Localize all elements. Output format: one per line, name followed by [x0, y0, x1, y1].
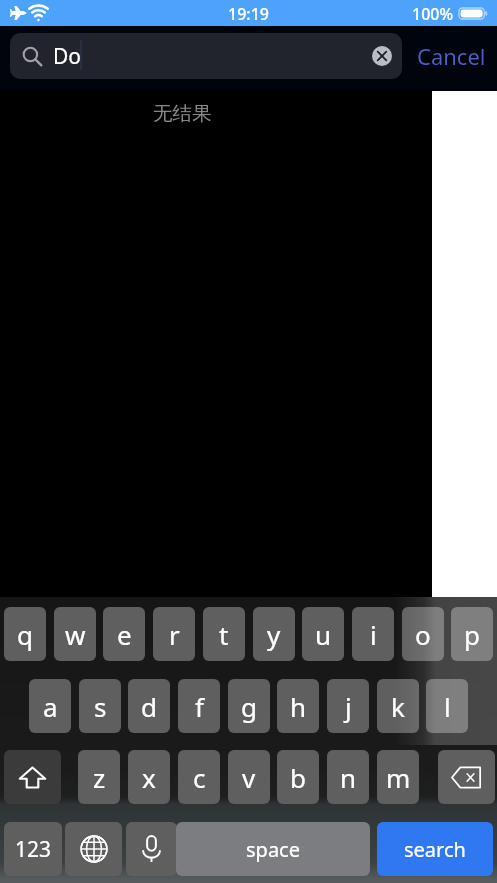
button[interactable]: Shift [4, 750, 61, 804]
button[interactable]: p [451, 607, 493, 661]
button[interactable]: Do [10, 33, 402, 79]
staticText: h [290, 689, 307, 724]
button[interactable]: r [153, 607, 195, 661]
button[interactable]: k [377, 679, 419, 733]
staticText: n [340, 760, 357, 795]
staticText: Cancel [417, 41, 486, 71]
button[interactable]: Clear text [372, 46, 392, 66]
staticText: m [386, 760, 411, 795]
button[interactable]: y [253, 607, 295, 661]
staticText: o [415, 617, 431, 652]
button[interactable]: j [327, 679, 369, 733]
button[interactable]: Numbers [4, 822, 62, 876]
staticText: 100% [412, 3, 454, 25]
button[interactable]: a [29, 679, 71, 733]
staticText: p [464, 617, 480, 652]
button[interactable]: l [426, 679, 468, 733]
button[interactable]: d [128, 679, 170, 733]
staticText: search [404, 836, 466, 863]
button[interactable]: Cancel [410, 33, 492, 79]
button[interactable]: h [277, 679, 319, 733]
staticText: l [444, 689, 451, 724]
button[interactable]: search [377, 822, 493, 876]
button[interactable]: Next keyboard [65, 822, 122, 876]
staticText: y [267, 617, 281, 652]
staticText: x [142, 760, 156, 795]
button[interactable]: s [79, 679, 121, 733]
button[interactable]: b [277, 750, 319, 804]
button[interactable]: Backspace [438, 750, 495, 804]
staticText: f [195, 689, 204, 724]
button[interactable]: i [352, 607, 394, 661]
staticText: 123 [15, 835, 52, 864]
staticText: 19:19 [228, 3, 269, 25]
button[interactable]: q [4, 607, 46, 661]
staticText: k [391, 689, 405, 724]
button[interactable]: n [327, 750, 369, 804]
staticText: b [290, 760, 306, 795]
button[interactable]: z [78, 750, 120, 804]
button[interactable]: g [228, 679, 270, 733]
staticText: d [141, 689, 157, 724]
staticText: j [345, 689, 352, 724]
button[interactable]: o [402, 607, 444, 661]
staticText: v [242, 760, 256, 795]
button[interactable]: w [54, 607, 96, 661]
staticText: 无结果 [153, 101, 212, 126]
staticText: w [65, 617, 86, 652]
staticText: e [117, 617, 132, 652]
staticText: s [94, 689, 107, 724]
staticText: space [246, 836, 300, 863]
staticText: t [219, 617, 229, 652]
button[interactable]: t [203, 607, 245, 661]
staticText: g [241, 689, 257, 724]
staticText: a [43, 689, 58, 724]
button[interactable]: f [178, 679, 220, 733]
staticText: z [93, 760, 106, 795]
staticText: u [315, 617, 332, 652]
button[interactable]: e [103, 607, 145, 661]
staticText: r [169, 617, 180, 652]
button[interactable]: space [176, 822, 370, 876]
button[interactable]: u [302, 607, 344, 661]
staticText: Do [53, 42, 82, 71]
button[interactable]: Dictate [126, 822, 177, 876]
button[interactable]: v [228, 750, 270, 804]
staticText: q [17, 617, 33, 652]
button[interactable]: c [178, 750, 220, 804]
staticText: c [193, 760, 206, 795]
button[interactable]: m [377, 750, 419, 804]
button[interactable]: x [128, 750, 170, 804]
staticText: i [370, 617, 377, 652]
